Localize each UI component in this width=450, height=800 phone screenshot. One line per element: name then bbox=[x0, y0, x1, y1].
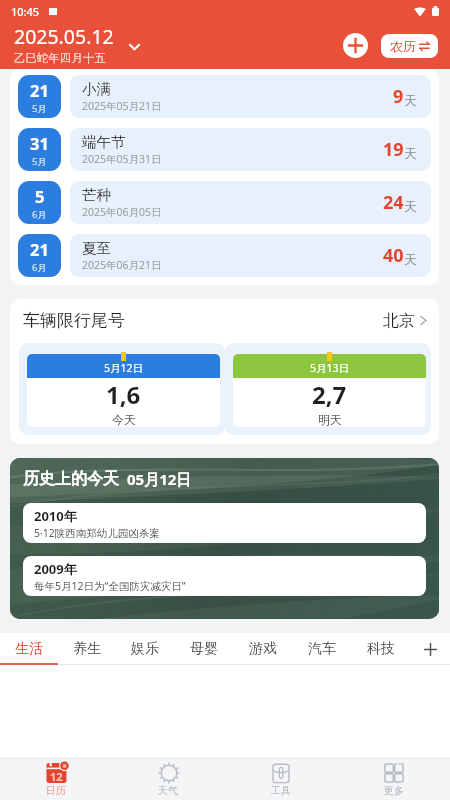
button[interactable]: 农历 bbox=[381, 34, 438, 58]
button[interactable]: 汽车 bbox=[292, 633, 351, 665]
staticText: 40 bbox=[383, 243, 404, 268]
staticText: 农历 bbox=[390, 38, 416, 54]
button[interactable]: 科技 bbox=[351, 633, 410, 665]
staticText: 5·12陕西南郑幼儿园凶杀案 bbox=[34, 526, 160, 540]
staticText: 生活 bbox=[15, 640, 43, 658]
staticText: 2025.05.12 bbox=[14, 23, 114, 50]
staticText: 游戏 bbox=[249, 640, 277, 658]
staticText: 芒种 bbox=[82, 186, 111, 204]
staticText: 2010年 bbox=[34, 507, 77, 525]
button[interactable]: 车辆限行尾号 bbox=[10, 310, 439, 331]
staticText: 5月13日 bbox=[310, 361, 350, 375]
staticText: 今天 bbox=[112, 412, 136, 427]
staticText: 明天 bbox=[318, 412, 342, 427]
staticText: 每年5月12日为“全国防灾减灾日” bbox=[34, 579, 186, 593]
staticText: 养生 bbox=[73, 640, 101, 658]
button[interactable]: 31 bbox=[18, 128, 431, 171]
button[interactable]: 2009年 bbox=[23, 556, 426, 596]
staticText: 6月 bbox=[32, 208, 47, 221]
staticText: 19 bbox=[383, 137, 404, 162]
staticText: 小满 bbox=[82, 80, 111, 98]
staticText: 5月 bbox=[32, 102, 47, 115]
staticText: 工具 bbox=[271, 784, 291, 797]
button[interactable]: 游戏 bbox=[233, 633, 292, 665]
staticText: 10:45 bbox=[11, 4, 40, 19]
staticText: 12 bbox=[50, 769, 63, 784]
staticText: 9 bbox=[393, 84, 404, 109]
button[interactable]: 生活 bbox=[0, 633, 58, 665]
staticText: 天 bbox=[404, 199, 417, 215]
staticText: 21 bbox=[30, 238, 49, 260]
staticText: 天 bbox=[404, 93, 417, 109]
button[interactable]: 5月12日 bbox=[27, 354, 220, 427]
button[interactable]: 5 bbox=[18, 181, 431, 224]
staticText: 汽车 bbox=[308, 640, 336, 658]
button[interactable]: 5月13日 bbox=[233, 354, 426, 427]
staticText: 天 bbox=[404, 146, 417, 162]
staticText: 2025年06月05日 bbox=[82, 205, 162, 219]
button[interactable]: 养生 bbox=[58, 633, 116, 665]
staticText: 05月12日 bbox=[127, 469, 192, 489]
staticText: 6月 bbox=[32, 261, 47, 274]
staticText: 2025年06月21日 bbox=[82, 258, 162, 272]
button[interactable]: 天气 bbox=[112, 759, 224, 800]
staticText: 母婴 bbox=[190, 640, 218, 658]
staticText: 乙巳蛇年四月十五 bbox=[14, 51, 106, 65]
button[interactable]: 工具 bbox=[224, 759, 337, 800]
button[interactable]: 母婴 bbox=[174, 633, 233, 665]
staticText: 科技 bbox=[367, 640, 395, 658]
staticText: 24 bbox=[383, 190, 404, 215]
staticText: 天气 bbox=[158, 784, 178, 797]
staticText: 端午节 bbox=[82, 133, 126, 151]
button[interactable]: 2010年 bbox=[23, 503, 426, 543]
staticText: 历史上的今天 bbox=[23, 469, 119, 489]
staticText: 更多 bbox=[384, 784, 404, 797]
button[interactable]: Add channel bbox=[410, 633, 450, 665]
staticText: 夏至 bbox=[82, 239, 111, 257]
staticText: 2025年05月31日 bbox=[82, 152, 162, 166]
staticText: 31 bbox=[30, 132, 49, 154]
staticText: 2,7 bbox=[312, 378, 347, 411]
button[interactable]: 更多 bbox=[337, 759, 450, 800]
staticText: 北京 bbox=[383, 311, 415, 331]
staticText: 娱乐 bbox=[131, 640, 159, 658]
button[interactable]: 21 bbox=[18, 234, 431, 277]
button[interactable]: Add event bbox=[343, 33, 368, 58]
staticText: 日历 bbox=[46, 784, 66, 797]
button[interactable]: 日历 bbox=[0, 759, 112, 800]
button[interactable]: 娱乐 bbox=[116, 633, 174, 665]
staticText: 车辆限行尾号 bbox=[23, 310, 125, 331]
staticText: 天 bbox=[404, 252, 417, 268]
button[interactable]: Expand bbox=[125, 38, 143, 56]
button[interactable]: 21 bbox=[18, 75, 431, 118]
staticText: 2025年05月21日 bbox=[82, 99, 162, 113]
staticText: 1,6 bbox=[106, 378, 141, 411]
staticText: 2009年 bbox=[34, 560, 77, 578]
staticText: 5 bbox=[35, 185, 45, 207]
staticText: 5月12日 bbox=[104, 361, 144, 375]
staticText: 21 bbox=[30, 79, 49, 101]
staticText: 5月 bbox=[32, 155, 47, 168]
